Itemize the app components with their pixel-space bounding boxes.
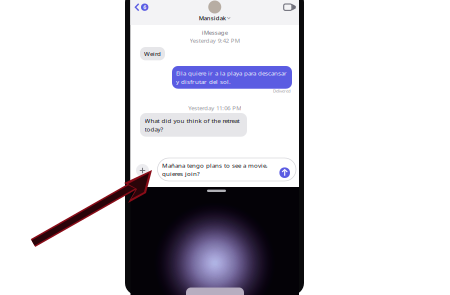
staticText: iMessage <box>202 28 228 36</box>
button[interactable]: Send <box>278 166 291 179</box>
staticText: Mañana tengo plans to see a movie, quier… <box>162 161 268 178</box>
staticText: Yesterday 11:06 PM <box>188 104 241 112</box>
button[interactable]: Mansidak contact details <box>199 0 231 22</box>
button[interactable]: FaceTime video call <box>277 1 299 13</box>
staticText: Mansidak <box>199 14 226 22</box>
staticText: Yesterday 9:42 PM <box>190 36 240 44</box>
staticText: Weird <box>144 49 161 58</box>
staticText: What did you think of the retreat today? <box>144 116 239 133</box>
staticText: Delivered <box>273 88 291 94</box>
staticText: Ella quiere ir a la playa para descansar… <box>176 69 287 86</box>
button[interactable]: Add attachment <box>136 164 149 177</box>
button[interactable]: Back <box>130 1 153 13</box>
staticText: 6 <box>143 4 146 11</box>
